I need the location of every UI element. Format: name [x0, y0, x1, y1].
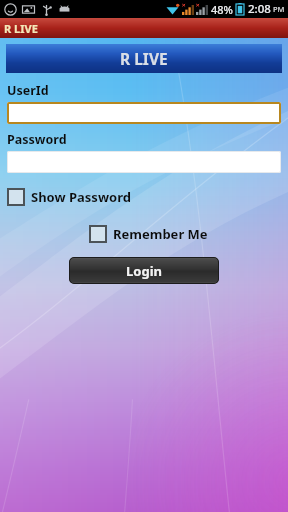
button[interactable]: Checkbox	[89, 223, 208, 245]
other: Checkbox	[7, 188, 25, 206]
button[interactable]	[7, 102, 281, 124]
button[interactable]: Checkbox	[7, 186, 131, 208]
button[interactable]: Login	[69, 257, 219, 284]
other: Checkbox	[89, 225, 107, 243]
staticText: PM	[273, 4, 285, 14]
staticText: Login	[126, 262, 162, 280]
staticText: R LIVE	[120, 48, 168, 69]
staticText: 2:08	[248, 1, 271, 17]
staticText: 48%	[211, 2, 233, 17]
staticText: Show Password	[31, 188, 131, 206]
staticText: Remember Me	[113, 225, 208, 243]
staticText: Password	[7, 131, 67, 148]
staticText: UserId	[7, 82, 49, 99]
button[interactable]	[7, 151, 281, 173]
button[interactable]: R LIVE	[6, 44, 282, 73]
staticText: R LIVE	[4, 21, 38, 36]
